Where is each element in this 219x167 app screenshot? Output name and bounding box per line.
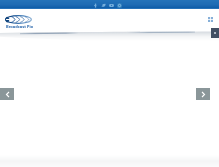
button[interactable]: Menu: [205, 14, 215, 24]
staticText: Broadcast Pix: [5, 24, 34, 29]
button[interactable]: Previous slide: [0, 88, 14, 100]
button[interactable]: Next slide: [196, 88, 210, 100]
button[interactable]: Instagram: [115, 1, 123, 9]
button[interactable]: Broadcast Pix home: [5, 12, 35, 28]
button[interactable]: YouTube: [107, 1, 115, 9]
button[interactable]: Twitter: [99, 1, 107, 9]
button[interactable]: Open panel: [211, 28, 219, 38]
button[interactable]: Facebook: [91, 1, 99, 9]
